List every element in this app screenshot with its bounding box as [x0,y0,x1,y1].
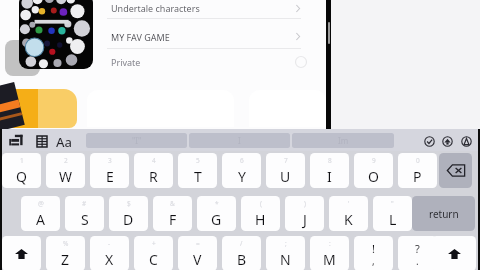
button[interactable]: M [310,236,349,270]
staticText: ? [415,241,420,256]
staticText: 1 [20,156,24,165]
staticText: H [255,210,266,229]
staticText: ' [348,199,350,208]
staticText: C [149,250,158,269]
staticText: Z [61,250,70,269]
button[interactable]: Table [37,136,47,147]
staticText: Y [238,167,246,186]
staticText: , [372,254,375,268]
button[interactable]: Shift [432,236,476,270]
button[interactable]: Confirm [424,136,435,147]
staticText: - [108,239,111,248]
staticText: @ [38,199,44,208]
staticText: . [416,254,419,268]
button[interactable]: G [197,196,236,231]
staticText: K [344,210,353,229]
button[interactable]: ! [354,236,393,270]
staticText: I [327,167,332,186]
staticText: 8 [328,156,332,165]
button[interactable]: Markup [461,136,472,147]
button[interactable]: C [134,236,173,270]
staticText: J [303,210,307,229]
staticText: 7 [284,156,288,165]
staticText: 6 [240,156,244,165]
staticText: W [59,167,73,186]
button[interactable]: J [285,196,324,231]
staticText: "I" [132,135,142,146]
button[interactable]: Shift [2,236,41,270]
button[interactable]: U [266,153,305,188]
button[interactable]: S [65,196,104,231]
staticText: 2 [64,156,68,165]
button[interactable]: Y [222,153,261,188]
staticText: A [36,210,45,229]
staticText: = [196,239,200,248]
button[interactable]: Aa [56,133,72,151]
button[interactable]: Undo [9,134,23,147]
button[interactable]: W [46,153,85,188]
staticText: R [149,167,158,186]
staticText: L [389,210,397,229]
button[interactable]: D [109,196,148,231]
button[interactable]: Z [46,236,85,270]
button[interactable]: F [153,196,192,231]
staticText: D [123,210,134,229]
button[interactable]: O [354,153,393,188]
button[interactable]: R [134,153,173,188]
button[interactable]: K [329,196,368,231]
staticText: 0 [416,156,420,165]
button[interactable]: N [266,236,305,270]
staticText: % [63,239,69,248]
staticText: ) [304,199,306,208]
button[interactable]: H [241,196,280,231]
staticText: U [280,167,291,186]
staticText: / [240,239,243,248]
staticText: Undertale characters [111,2,200,14]
staticText: N [280,250,291,269]
staticText: return [429,207,459,221]
staticText: $ [127,199,131,208]
staticText: 3 [108,156,112,165]
button[interactable]: Backspace [439,153,472,188]
button[interactable]: V [178,236,217,270]
staticText: ; [285,239,287,248]
button[interactable]: P [398,153,437,188]
staticText: F [169,210,177,229]
staticText: Private [111,56,141,68]
staticText: Im [338,135,349,146]
staticText: MY FAV GAME [111,31,170,43]
button[interactable]: Dictation [442,136,453,147]
button[interactable]: I [310,153,349,188]
button[interactable]: ? [398,236,437,270]
button[interactable]: A [21,196,60,231]
button[interactable]: T [178,153,217,188]
staticText: * [215,199,219,208]
staticText: ( [260,199,262,208]
staticText: M [323,250,336,269]
button[interactable]: Undertale characters [104,0,302,18]
staticText: S [81,210,89,229]
staticText: 9 [372,156,376,165]
button[interactable]: L [373,196,412,231]
staticText: O [368,167,379,186]
staticText: G [211,210,222,229]
staticText: Q [16,167,27,186]
button[interactable]: B [222,236,261,270]
staticText: Aa [56,133,72,151]
staticText: E [106,167,114,186]
staticText: + [152,239,156,248]
staticText: : [329,239,331,248]
staticText: V [193,250,202,269]
button[interactable]: Q [2,153,41,188]
staticText: 4 [152,156,156,165]
button[interactable]: Private [104,51,309,71]
button[interactable]: X [90,236,129,270]
button[interactable]: MY FAV GAME [104,27,302,46]
staticText: " [391,199,394,208]
button[interactable]: E [90,153,129,188]
button[interactable]: return [412,196,475,231]
staticText: X [105,250,114,269]
